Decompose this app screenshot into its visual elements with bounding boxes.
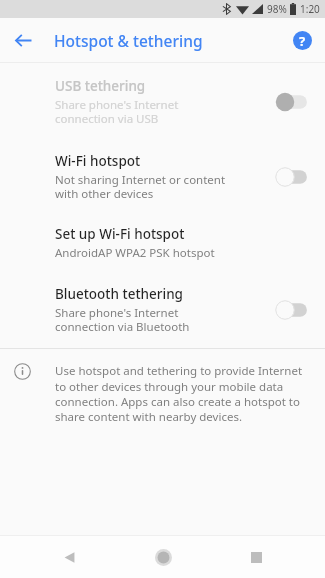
button[interactable]: Toggle	[275, 90, 313, 114]
button[interactable]: Home	[146, 540, 180, 574]
staticText: USB tethering	[55, 77, 146, 95]
button[interactable]: USB tethering	[0, 63, 325, 140]
staticText: 98%	[267, 2, 287, 16]
button[interactable]: Set up Wi-Fi hotspot	[0, 213, 325, 275]
staticText: Hotspot & tethering	[54, 30, 203, 51]
button[interactable]: Help	[287, 25, 317, 55]
staticText: Not sharing Internet or content with oth…	[55, 172, 226, 201]
button[interactable]: Bluetooth tethering	[0, 275, 325, 348]
staticText: Share phone's Internet connection via Bl…	[55, 305, 226, 334]
button[interactable]: Back	[7, 24, 39, 56]
staticText: Wi-Fi hotspot	[55, 152, 141, 170]
staticText: Bluetooth tethering	[55, 285, 183, 303]
staticText: 1:20	[300, 2, 320, 16]
button[interactable]: Recent apps	[239, 540, 273, 574]
button[interactable]: Wi-Fi hotspot	[0, 140, 325, 213]
staticText: Use hotspot and tethering to provide Int…	[55, 363, 311, 424]
button[interactable]: Back	[52, 540, 86, 574]
staticText: Share phone's Internet connection via US…	[55, 97, 226, 126]
staticText: ?	[299, 32, 306, 50]
button[interactable]: Toggle	[275, 165, 313, 189]
staticText: Set up Wi-Fi hotspot	[55, 225, 185, 243]
button[interactable]: Toggle	[275, 298, 313, 322]
staticText: AndroidAP WPA2 PSK hotspot	[55, 245, 215, 261]
